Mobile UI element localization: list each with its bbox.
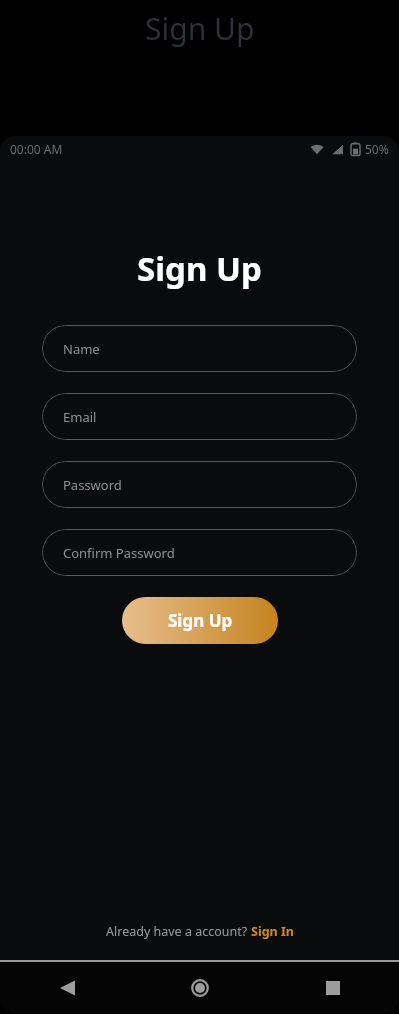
staticText: Password — [63, 476, 122, 494]
staticText: Already have a account? — [106, 923, 251, 940]
staticText: Email — [63, 408, 97, 426]
staticText: Confirm Password — [63, 544, 175, 562]
button[interactable]: Recent apps — [266, 962, 399, 1014]
staticText: Name — [63, 340, 100, 358]
button[interactable]: Home — [133, 962, 266, 1014]
staticText: Sign In — [251, 923, 294, 940]
staticText: 00:00 AM — [10, 141, 63, 157]
staticText: Sign Up — [137, 246, 262, 291]
button[interactable]: Email — [42, 393, 357, 440]
button[interactable]: Already have a account? — [98, 917, 302, 946]
staticText: Sign Up — [145, 8, 255, 49]
other: Wi-Fi — [310, 142, 324, 156]
staticText: Sign Up — [168, 609, 233, 632]
button[interactable]: Name — [42, 325, 357, 372]
button[interactable]: Password — [42, 461, 357, 508]
other: Battery — [351, 142, 360, 156]
button[interactable]: Confirm Password — [42, 529, 357, 576]
button[interactable]: Sign Up — [122, 597, 278, 644]
other: Signal — [331, 143, 344, 156]
button[interactable]: Back — [0, 962, 133, 1014]
staticText: 50% — [365, 141, 389, 157]
